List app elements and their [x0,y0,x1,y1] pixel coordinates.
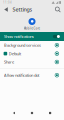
staticText: Background services [4,42,41,48]
staticText: Share [4,59,14,65]
button[interactable]: Show notifications [0,32,64,41]
button[interactable]: Allow notification dot [0,71,64,79]
button[interactable]: Back [2,5,10,14]
button[interactable]: Background services [0,41,64,49]
button[interactable]: Back [10,109,18,117]
button[interactable]: Default [0,49,64,58]
button[interactable]: Recent apps [46,109,54,117]
button[interactable]: Search [53,5,62,14]
button[interactable]: Home [28,109,36,117]
staticText: Show notifications [4,34,34,39]
staticText: Default [9,51,21,56]
staticText: 11:04 [3,1,12,4]
staticText: MobileCore [23,27,40,30]
staticText: Allow notification dot [4,72,39,78]
staticText: Settings [13,6,33,13]
button[interactable]: Share [0,58,64,66]
